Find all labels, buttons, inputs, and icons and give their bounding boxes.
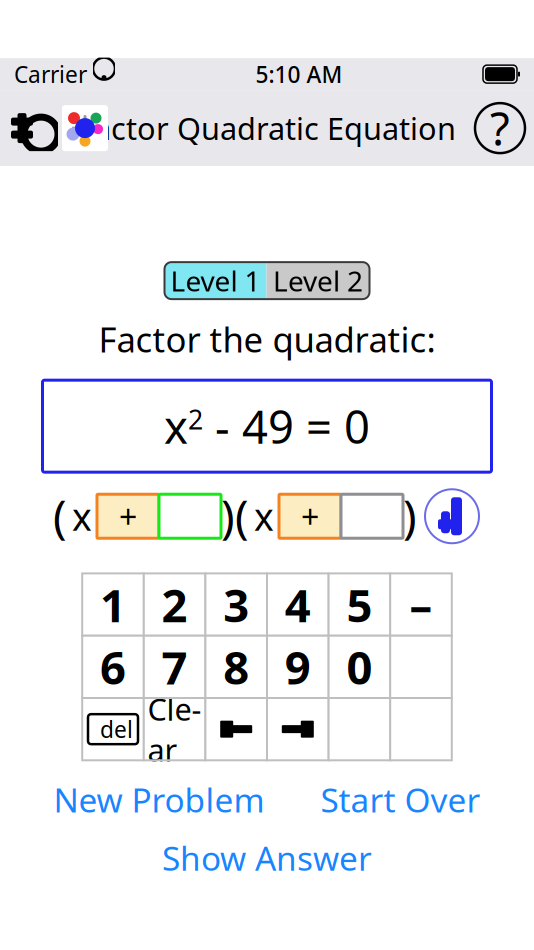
button[interactable] <box>267 698 329 760</box>
staticText: 4 <box>285 574 311 635</box>
staticText: x <box>254 491 274 541</box>
button[interactable]: Level 1 <box>164 262 266 299</box>
button[interactable] <box>159 494 221 538</box>
staticText: 8 <box>223 637 249 697</box>
staticText: x <box>164 396 188 456</box>
staticText: New Problem <box>53 777 264 822</box>
staticText: 2 <box>162 574 188 635</box>
staticText: 2 <box>188 401 203 437</box>
staticText: Factor the quadratic: <box>98 316 435 362</box>
button[interactable] <box>390 698 452 760</box>
button[interactable]: 8 <box>205 636 267 698</box>
staticText: Factor Quadratic Equation <box>78 108 456 148</box>
staticText: 7 <box>162 637 188 697</box>
staticText: 9 <box>285 637 311 697</box>
button[interactable]: + <box>279 494 341 538</box>
staticText: 1 <box>100 574 126 635</box>
button[interactable] <box>329 698 390 760</box>
staticText: Level 2 <box>273 262 363 299</box>
button[interactable]: 4 <box>267 573 329 636</box>
staticText: Level 1 <box>170 262 260 299</box>
button[interactable]: Show Answer <box>156 832 378 884</box>
staticText: 3 <box>223 574 249 635</box>
button[interactable] <box>390 636 452 698</box>
button[interactable]: Clear <box>144 698 205 760</box>
staticText: Carrier <box>14 59 87 89</box>
button[interactable]: 9 <box>267 636 329 698</box>
button[interactable]: 7 <box>144 636 205 698</box>
staticText: - 49 = 0 <box>203 396 370 456</box>
button[interactable]: Back <box>8 105 60 151</box>
staticText: ) <box>221 486 235 546</box>
button[interactable] <box>205 698 267 760</box>
staticText: Clear <box>148 688 202 770</box>
button[interactable]: – <box>390 573 452 636</box>
button[interactable]: 6 <box>82 636 144 698</box>
staticText: Show Answer <box>162 836 372 880</box>
staticText: + <box>119 495 137 537</box>
button[interactable]: 1 <box>82 573 144 636</box>
staticText: x <box>72 491 92 541</box>
staticText: Start Over <box>320 777 480 822</box>
button[interactable]: Check answer <box>423 487 481 545</box>
button[interactable]: 5 <box>329 573 390 636</box>
staticText: – <box>409 574 432 635</box>
staticText: del <box>100 714 133 744</box>
staticText: + <box>301 495 319 537</box>
button[interactable]: 0 <box>329 636 390 698</box>
staticText: 5:10 AM <box>255 59 342 89</box>
staticText: 6 <box>100 637 126 697</box>
button[interactable]: New Problem <box>47 773 270 826</box>
staticText: ? <box>490 98 510 158</box>
staticText <box>186 495 194 537</box>
staticText: ( <box>53 486 67 546</box>
staticText: ( <box>235 486 249 546</box>
button[interactable]: del <box>82 698 144 760</box>
button[interactable]: 2 <box>144 573 205 636</box>
button[interactable]: 3 <box>205 573 267 636</box>
button[interactable]: Help <box>474 102 526 154</box>
button[interactable]: App icon <box>60 103 110 153</box>
staticText <box>368 495 376 537</box>
button[interactable]: + <box>97 494 159 538</box>
staticText: 0 <box>346 637 372 697</box>
staticText: ) <box>403 486 417 546</box>
button[interactable] <box>341 494 403 538</box>
staticText: 5 <box>346 574 372 635</box>
button[interactable]: Start Over <box>314 773 486 826</box>
button[interactable]: Level 2 <box>266 262 369 299</box>
